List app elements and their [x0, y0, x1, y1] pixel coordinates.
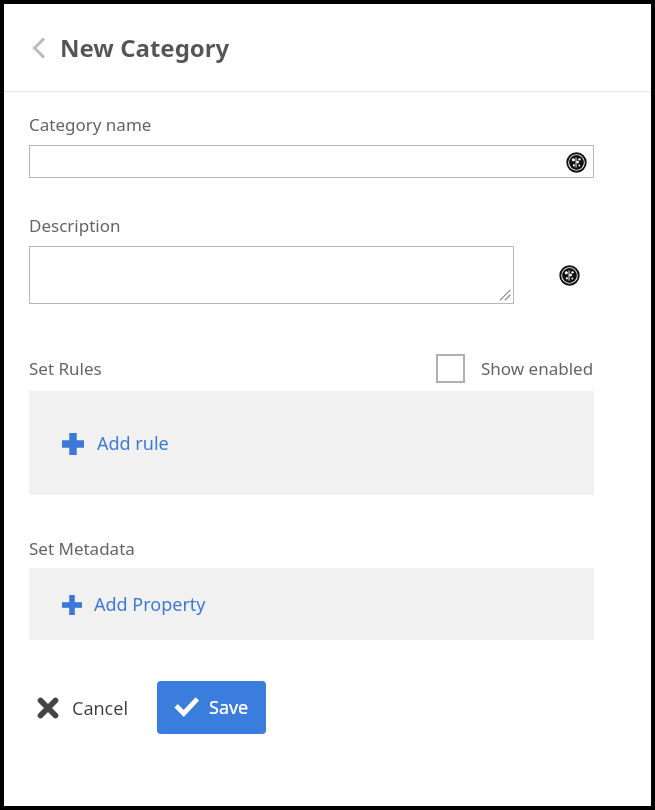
staticText: Show enabled [481, 357, 594, 380]
button[interactable]: Translate category name [565, 151, 587, 173]
button[interactable]: Back [22, 31, 56, 65]
button[interactable]: Add rule [62, 431, 169, 456]
staticText: Cancel [72, 696, 129, 721]
staticText: Add rule [97, 431, 169, 456]
staticText: Add Property [94, 592, 206, 617]
button[interactable]: Save [157, 681, 266, 734]
button[interactable]: Translate category name [29, 145, 594, 178]
staticText: New Category [60, 31, 230, 64]
button[interactable]: Show enabled [436, 354, 594, 383]
staticText: Category name [29, 113, 152, 136]
button[interactable] [29, 246, 514, 304]
staticText: Description [29, 214, 121, 237]
button[interactable]: Translate description [556, 262, 582, 288]
staticText: Set Metadata [29, 537, 135, 560]
staticText: Save [209, 695, 249, 720]
button[interactable]: Cancel [37, 684, 129, 732]
staticText: Set Rules [29, 357, 102, 380]
button[interactable]: Add Property [62, 592, 206, 617]
